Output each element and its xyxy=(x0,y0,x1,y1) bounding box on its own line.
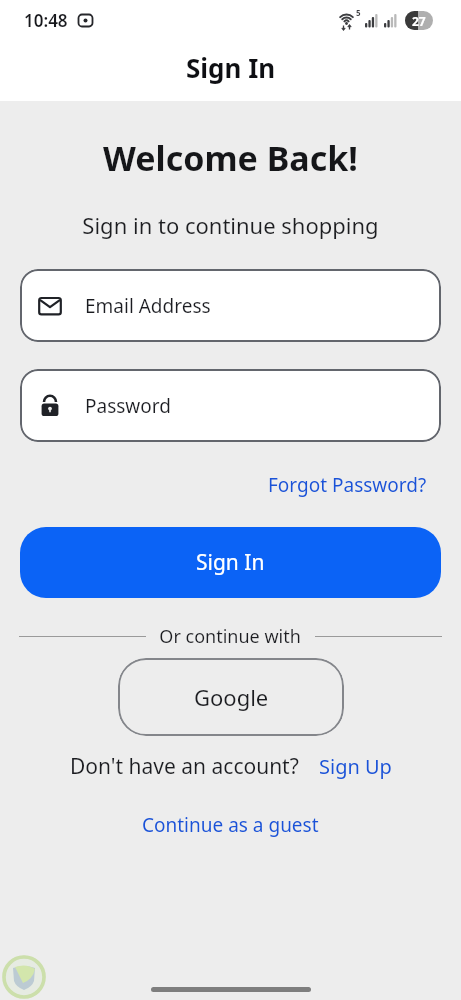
button[interactable]: Forgot Password? xyxy=(268,472,427,498)
staticText: 5 xyxy=(356,7,361,18)
staticText: Password xyxy=(85,393,171,419)
button[interactable]: Password xyxy=(20,369,441,442)
staticText: Sign in to continue shopping xyxy=(0,210,461,240)
staticText: 10:48 xyxy=(24,9,68,32)
staticText: Sign In xyxy=(196,548,265,577)
staticText: Or continue with xyxy=(150,624,311,649)
staticText: Google xyxy=(194,682,269,712)
staticText: Sign In xyxy=(186,50,276,85)
staticText: Don't have an account? xyxy=(70,752,299,781)
staticText: 27 xyxy=(412,13,426,29)
button[interactable]: Google xyxy=(118,658,344,736)
button[interactable]: Sign Up xyxy=(319,753,392,780)
button[interactable]: Email Address xyxy=(20,269,441,342)
button[interactable]: Sign In xyxy=(20,527,441,598)
button[interactable]: Continue as a guest xyxy=(142,812,319,838)
staticText: Welcome Back! xyxy=(0,135,461,181)
staticText: Email Address xyxy=(85,293,211,319)
